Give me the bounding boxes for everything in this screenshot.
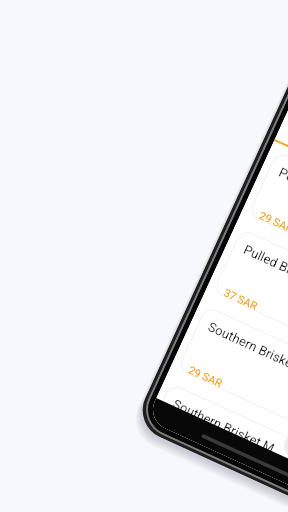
staticText: Southern Brisket M <box>170 396 277 456</box>
staticText: 29 SAR <box>258 209 288 234</box>
staticText: Pulled Brisket S <box>241 242 288 293</box>
staticText: Southern Brisket S <box>206 319 288 377</box>
button[interactable]: Southern Brisket S <box>177 305 288 454</box>
staticText: 37 SAR <box>222 286 260 311</box>
button[interactable]: Cart <box>280 429 288 473</box>
button[interactable]: Southern Brisket M <box>159 383 288 494</box>
staticText: Pulled Brisket <box>277 165 288 211</box>
staticText: 29 SAR <box>187 364 224 389</box>
button[interactable]: Pulled Brisket S <box>212 228 288 377</box>
button[interactable]: Pulled Brisket <box>248 151 288 300</box>
